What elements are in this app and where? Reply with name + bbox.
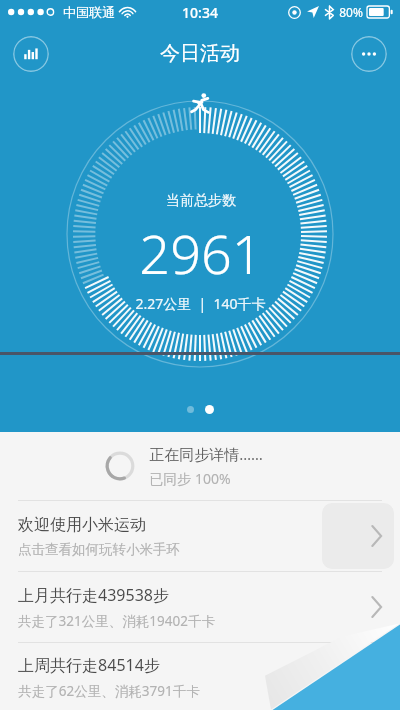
staticText: 80% bbox=[339, 4, 363, 20]
staticText: 当前总步数 bbox=[166, 192, 236, 210]
button[interactable]: 正在同步详情…… bbox=[0, 432, 400, 500]
staticText: 已同步 100% bbox=[149, 469, 231, 488]
button[interactable]: More options bbox=[351, 36, 387, 72]
staticText: 中国联通 bbox=[63, 4, 115, 20]
staticText: 2961 bbox=[139, 216, 263, 290]
staticText: 上月共行走439538步 bbox=[18, 584, 169, 606]
staticText: 10:34 bbox=[182, 3, 218, 22]
button[interactable]: Statistics bbox=[13, 36, 49, 72]
button[interactable]: 上月共行走439538步 bbox=[0, 572, 400, 642]
button[interactable]: 欢迎使用小米运动 bbox=[0, 501, 400, 571]
staticText: 点击查看如何玩转小米手环 bbox=[18, 541, 180, 558]
staticText: 共走了62公里、消耗3791千卡 bbox=[18, 682, 200, 700]
staticText: 2.27公里 | 140千卡 bbox=[135, 294, 266, 313]
staticText: 今日活动 bbox=[160, 41, 240, 66]
staticText: 共走了321公里、消耗19402千卡 bbox=[18, 612, 215, 630]
staticText: 上周共行走84514步 bbox=[18, 654, 160, 676]
button[interactable]: 上周共行走84514步 bbox=[0, 643, 400, 710]
staticText: 正在同步详情…… bbox=[149, 444, 263, 464]
staticText: 欢迎使用小米运动 bbox=[18, 515, 146, 535]
